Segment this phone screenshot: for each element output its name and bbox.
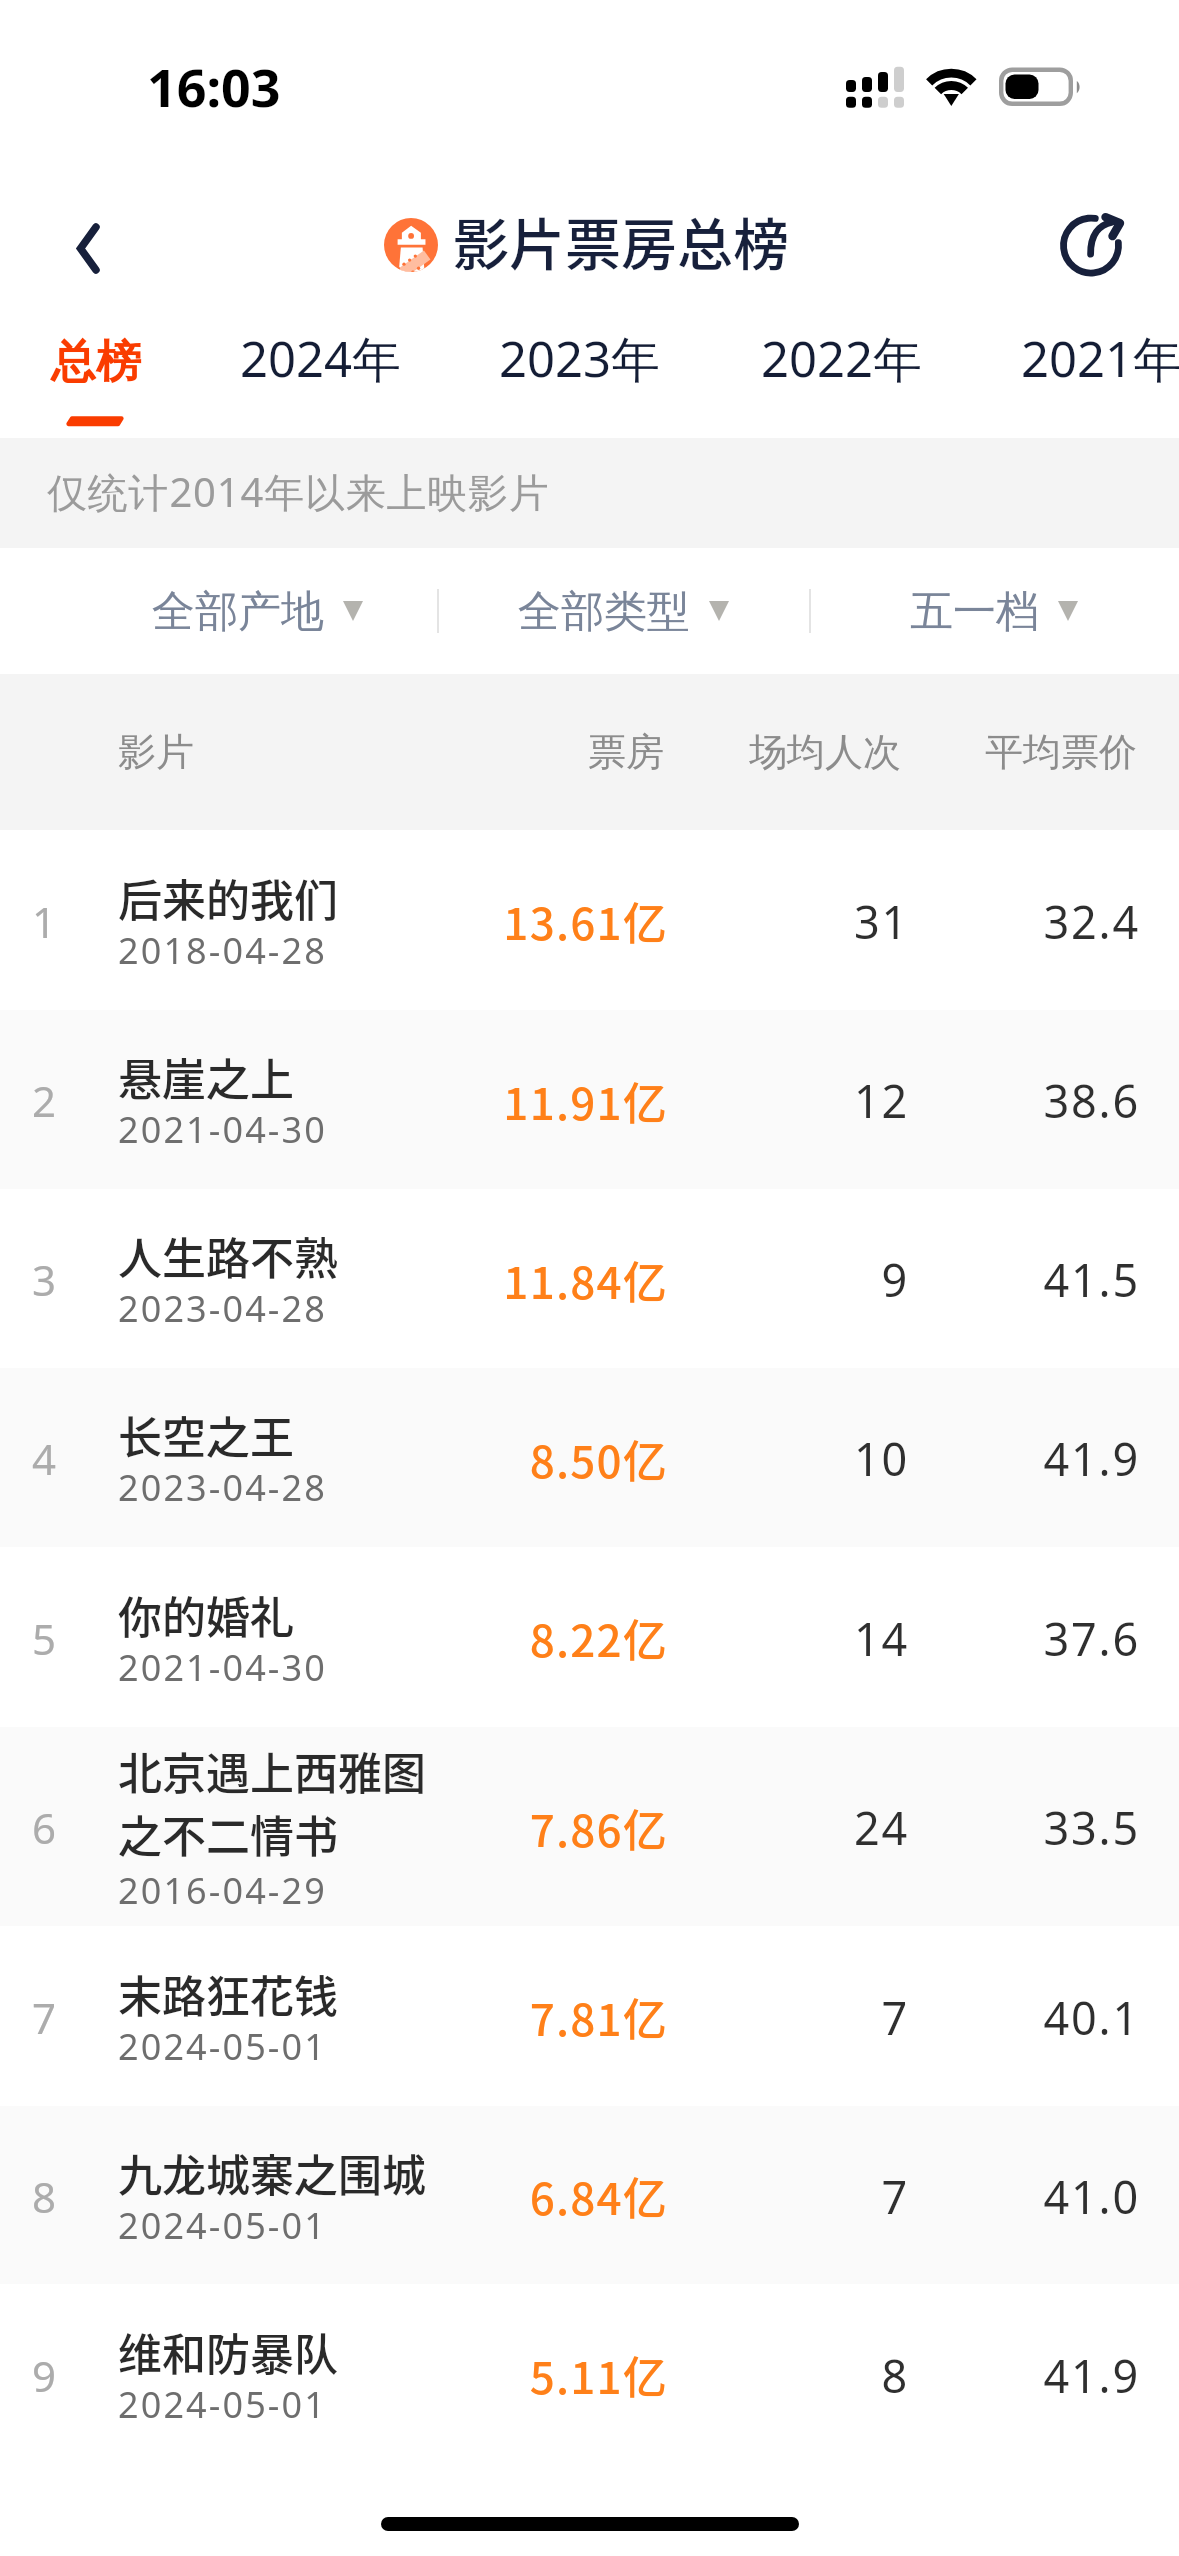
staticText: 九龙城寨之围城 [118,2141,426,2205]
staticText: 2 [32,1072,57,1129]
staticText: 11.84亿 [465,1248,668,1312]
staticText: 2024-05-01 [118,2022,327,2071]
staticText: 38.6 [951,1070,1140,1131]
button[interactable]: 2022年 [722,310,962,438]
staticText: 长空之王 [118,1403,294,1467]
staticText: 8 [759,2345,909,2406]
button[interactable]: 2023年 [460,310,700,438]
button[interactable]: 5 [0,1547,1179,1727]
staticText: 41.0 [951,2166,1140,2227]
button[interactable]: 4 [0,1368,1179,1547]
staticText: 2021-04-30 [118,1105,327,1154]
staticText: 8.22亿 [465,1606,668,1670]
staticText: 7.86亿 [465,1796,668,1860]
staticText: 北京遇上西雅图 [118,1739,426,1803]
button[interactable]: 总榜 [0,310,216,438]
staticText: 末路狂花钱 [118,1962,338,2026]
button[interactable]: 6 [0,1727,1179,1926]
staticText: 7 [759,2166,909,2227]
staticText: 平均票价 [985,728,1137,776]
staticText: 31 [759,891,909,952]
staticText: 之不二情书 [118,1802,338,1866]
staticText: 6.84亿 [465,2164,668,2228]
staticText: 2023-04-28 [118,1284,327,1333]
staticText: 五一档 [910,585,1039,639]
staticText: 5.11亿 [465,2343,668,2407]
staticText: 41.9 [951,1428,1140,1489]
staticText: 2021-04-30 [118,1643,327,1692]
button[interactable]: 1 [0,830,1179,1010]
staticText: 场均人次 [749,728,901,776]
staticText: 7 [32,1989,57,2046]
staticText: 33.5 [951,1797,1140,1858]
staticText: 8 [32,2168,57,2225]
staticText: 7.81亿 [465,1985,668,2049]
staticText: 11.91亿 [465,1069,668,1133]
button[interactable]: 2021年 [982,310,1179,438]
staticText: 9 [759,1249,909,1310]
staticText: 8.50亿 [465,1427,668,1491]
staticText: 2024年 [240,325,402,392]
staticText: 后来的我们 [118,866,338,930]
staticText: 维和防暴队 [118,2320,338,2384]
staticText: 2021年 [1021,325,1179,392]
staticText: 你的婚礼 [118,1583,294,1647]
staticText: 13.61亿 [465,889,668,953]
staticText: 人生路不熟 [118,1224,338,1288]
staticText: 2018-04-28 [118,926,327,975]
button[interactable]: 五一档 [910,548,1078,674]
staticText: 41.9 [951,2345,1140,2406]
staticText: 2022年 [761,325,923,392]
staticText: 9 [32,2347,57,2404]
button[interactable]: 全部类型 [518,548,729,674]
staticText: 2023-04-28 [118,1463,327,1512]
button[interactable]: Back [42,203,136,297]
staticText: 16:03 [147,51,281,122]
button[interactable]: 2024年 [201,310,441,438]
button[interactable]: 7 [0,1926,1179,2106]
staticText: 7 [759,1987,909,2048]
staticText: 6 [32,1799,57,1856]
staticText: 14 [759,1608,909,1669]
staticText: 总榜 [51,334,141,391]
staticText: 全部类型 [518,585,690,639]
staticText: 2024-05-01 [118,2201,327,2250]
button[interactable]: 2 [0,1010,1179,1189]
staticText: 12 [759,1070,909,1131]
staticText: 全部产地 [152,585,324,639]
staticText: 41.5 [951,1249,1140,1310]
staticText: 2023年 [499,325,661,392]
button[interactable]: 全部产地 [152,548,363,674]
staticText: 5 [32,1610,57,1667]
staticText: 票房 [588,728,664,776]
button[interactable]: Share [1046,201,1136,291]
staticText: 2016-04-29 [118,1866,327,1915]
staticText: 37.6 [951,1608,1140,1669]
staticText: 影片票房总榜 [453,200,789,281]
button[interactable]: 3 [0,1189,1179,1368]
button[interactable]: 8 [0,2106,1179,2284]
staticText: 2024-05-01 [118,2380,327,2429]
staticText: 3 [32,1251,57,1308]
staticText: 悬崖之上 [118,1045,294,1109]
staticText: 仅统计2014年以来上映影片 [47,464,550,519]
staticText: 24 [759,1797,909,1858]
staticText: 40.1 [951,1987,1140,2048]
button[interactable]: 9 [0,2284,1179,2464]
staticText: 1 [32,893,57,950]
staticText: 4 [32,1430,57,1487]
staticText: 影片 [118,728,194,776]
staticText: 32.4 [951,891,1140,952]
staticText: 10 [759,1428,909,1489]
